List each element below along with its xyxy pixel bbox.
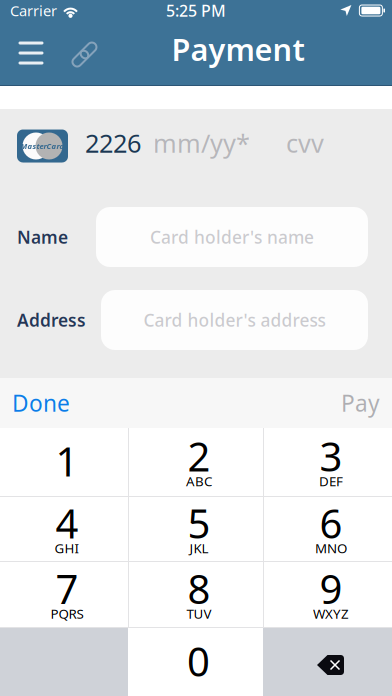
staticText: 2	[187, 429, 210, 482]
staticText: TUV	[186, 605, 211, 622]
staticText: WXYZ	[313, 605, 349, 622]
button[interactable]: 8	[129, 562, 263, 627]
button[interactable]: Card holder's name	[96, 207, 368, 267]
staticText: ABC	[186, 472, 212, 490]
button[interactable]: Done	[0, 373, 84, 433]
staticText: Card holder's address	[143, 308, 325, 331]
button[interactable]: Pay	[327, 373, 392, 433]
staticText: 5:25 PM	[166, 0, 226, 21]
button[interactable]: Menu	[6, 25, 56, 81]
staticText: Name	[17, 225, 68, 248]
staticText: MNO	[315, 539, 347, 557]
staticText: 9	[319, 562, 342, 615]
staticText: 1	[55, 434, 78, 487]
staticText: Pay	[341, 388, 380, 418]
staticText: 3	[319, 429, 342, 482]
staticText: Payment	[171, 29, 304, 69]
button[interactable]: Card holder's address	[101, 290, 368, 350]
button[interactable]: 9	[264, 562, 392, 627]
staticText: Done	[12, 388, 70, 418]
button[interactable]: 1	[0, 428, 128, 496]
staticText: cvv	[286, 126, 324, 160]
staticText: PQRS	[50, 605, 83, 622]
staticText: 0	[187, 634, 210, 687]
button[interactable]: 4	[0, 497, 128, 561]
button[interactable]: 2	[129, 428, 263, 496]
staticText: Card holder's name	[150, 225, 314, 248]
button[interactable]: 5	[129, 497, 263, 561]
staticText: 5	[187, 496, 210, 549]
button[interactable]: 3	[264, 428, 392, 496]
staticText: 7	[55, 562, 78, 615]
button[interactable]: 7	[0, 562, 128, 627]
staticText: JKL	[189, 539, 208, 557]
staticText: Carrier	[10, 1, 57, 20]
staticText: DEF	[319, 472, 343, 490]
staticText: MasterCard	[20, 141, 64, 151]
staticText: 4	[55, 496, 78, 549]
button[interactable]: 6	[264, 497, 392, 561]
button[interactable]: Delete	[263, 628, 392, 696]
staticText: 8	[187, 562, 210, 615]
button[interactable]: Link	[56, 25, 104, 81]
staticText: GHI	[54, 539, 79, 557]
staticText: Address	[17, 308, 86, 331]
button[interactable]: 0	[128, 628, 263, 696]
staticText: mm/yy*	[153, 126, 250, 160]
staticText: 6	[319, 496, 342, 549]
staticText: 2226	[85, 126, 141, 160]
